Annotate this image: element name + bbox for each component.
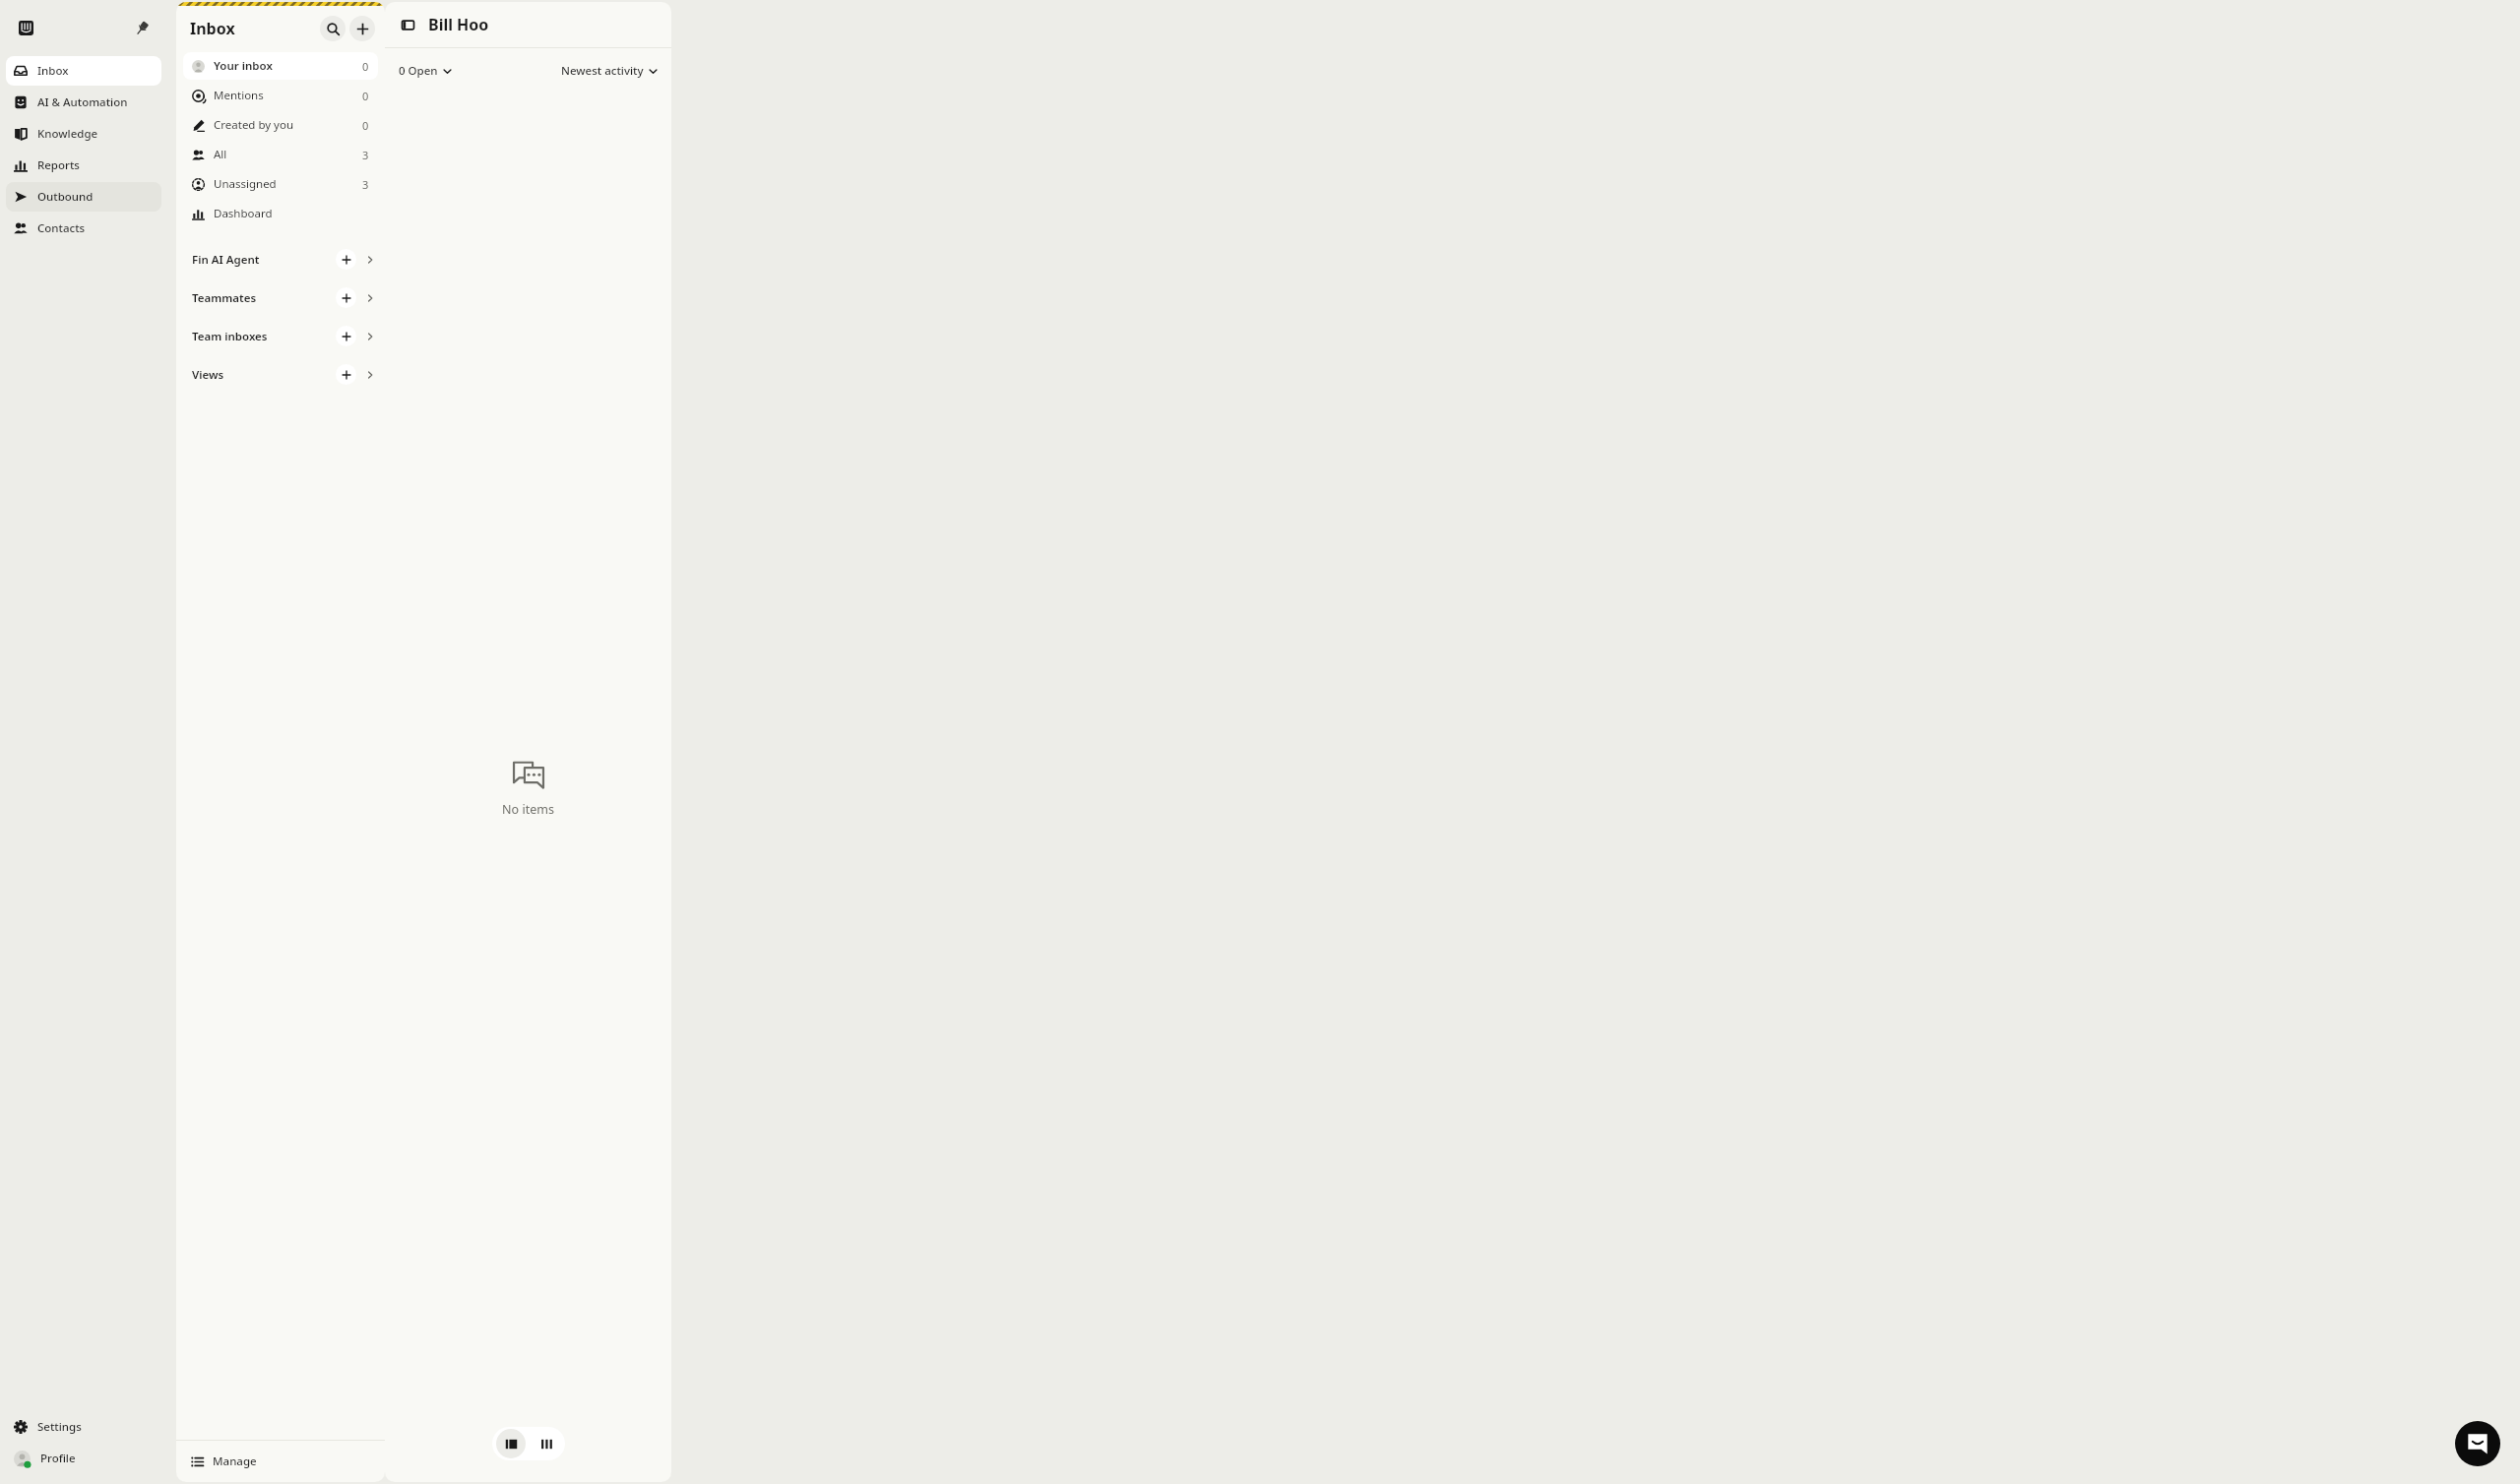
staticText: Fin AI Agent	[192, 252, 260, 268]
button[interactable]: Search	[320, 16, 346, 41]
button[interactable]: Expand Views	[364, 369, 376, 381]
staticText: 0	[362, 59, 369, 74]
staticText: 3	[362, 177, 369, 192]
button[interactable]: Mentions	[183, 82, 378, 109]
button[interactable]: Expand Fin AI Agent	[364, 254, 376, 266]
button[interactable]: Contacts	[6, 214, 161, 243]
staticText: Dashboard	[214, 206, 273, 221]
button[interactable]: Dashboard	[183, 200, 378, 227]
staticText: Settings	[37, 1419, 82, 1435]
button[interactable]: Fin AI Agent	[176, 240, 385, 278]
staticText: 3	[362, 148, 369, 162]
staticText: Teammates	[192, 290, 257, 306]
staticText: Inbox	[190, 18, 235, 39]
button[interactable]: Open Intercom messenger	[2455, 1421, 2500, 1466]
button[interactable]: Inbox	[6, 56, 161, 86]
button[interactable]: Team inboxes	[176, 317, 385, 355]
button[interactable]: Views	[176, 355, 385, 394]
staticText: Outbound	[37, 189, 94, 205]
staticText: Team inboxes	[192, 329, 268, 344]
button[interactable]: Pin sidebar	[129, 15, 155, 40]
button[interactable]: Add Views	[336, 364, 356, 385]
button[interactable]: 0 Open	[396, 60, 455, 82]
staticText: Your inbox	[214, 58, 273, 74]
button[interactable]: Created by you	[183, 111, 378, 139]
staticText: No items	[502, 801, 554, 818]
button[interactable]: Newest activity	[558, 60, 661, 82]
button[interactable]: Settings	[6, 1412, 161, 1442]
button[interactable]: Intercom home	[13, 15, 38, 40]
staticText: 0 Open	[399, 63, 438, 79]
button[interactable]: Add Team inboxes	[336, 326, 356, 346]
button[interactable]: Expand Teammates	[364, 292, 376, 304]
button[interactable]: Toggle sidebar	[399, 16, 416, 33]
button[interactable]: Add Fin AI Agent	[336, 249, 356, 270]
button[interactable]: Knowledge	[6, 119, 161, 149]
staticText: All	[214, 147, 227, 162]
button[interactable]: Add Teammates	[336, 287, 356, 308]
staticText: Manage	[213, 1453, 257, 1469]
button[interactable]: All	[183, 141, 378, 168]
staticText: Reports	[37, 157, 80, 173]
staticText: Unassigned	[214, 176, 277, 192]
staticText: Knowledge	[37, 126, 98, 142]
staticText: Newest activity	[561, 63, 644, 79]
button[interactable]: List and preview view	[496, 1429, 526, 1458]
staticText: Mentions	[214, 88, 264, 103]
button[interactable]: Profile	[6, 1443, 161, 1474]
button[interactable]: Your inbox	[183, 52, 378, 80]
button[interactable]: Expand Team inboxes	[364, 331, 376, 342]
button[interactable]: Manage	[176, 1441, 385, 1482]
button[interactable]: AI & Automation	[6, 88, 161, 117]
button[interactable]: Outbound	[6, 182, 161, 212]
staticText: Bill Hoo	[428, 14, 489, 35]
button[interactable]: New conversation	[349, 16, 375, 41]
staticText: AI & Automation	[37, 94, 128, 110]
staticText: Profile	[40, 1451, 76, 1466]
staticText: Created by you	[214, 117, 294, 133]
button[interactable]: Reports	[6, 151, 161, 180]
staticText: 0	[362, 118, 369, 133]
staticText: Inbox	[37, 63, 69, 79]
button[interactable]: Unassigned	[183, 170, 378, 198]
staticText: 0	[362, 89, 369, 103]
button[interactable]: Teammates	[176, 278, 385, 317]
staticText: Views	[192, 367, 224, 383]
button[interactable]: Column view	[532, 1429, 561, 1458]
staticText: Contacts	[37, 220, 86, 236]
